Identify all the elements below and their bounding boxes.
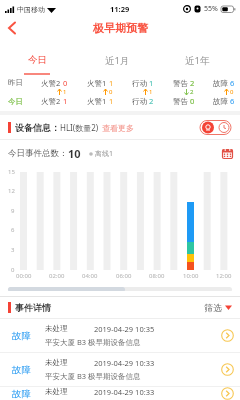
button[interactable]: 设备信息： (0, 115, 240, 139)
staticText: 中国移动 (17, 5, 45, 14)
staticText: 离线1 (95, 149, 114, 159)
staticText: 2 (149, 96, 154, 106)
staticText: HLI(数量2) (60, 122, 99, 133)
button[interactable]: 故障 (0, 387, 240, 400)
staticText: 9 (11, 207, 15, 215)
staticText: 1 (63, 88, 67, 96)
staticText: 08:00 (149, 272, 165, 280)
staticText: 1 (149, 78, 154, 88)
staticText: 近1月 (105, 54, 130, 67)
staticText: 今日事件总数： (8, 148, 68, 159)
staticText: 今日 (8, 97, 23, 106)
staticText: 1 (149, 88, 153, 96)
staticText: 2019-04-29 10:35 (94, 324, 155, 334)
staticText: 查看更多 (102, 123, 134, 133)
staticText: 2019-04-29 10:33 (94, 358, 155, 368)
button[interactable]: 近1月 (77, 44, 157, 76)
staticText: 故障 (12, 330, 31, 342)
staticText: 1 (109, 78, 114, 88)
staticText: 2 (190, 78, 195, 88)
staticText: 警告 (173, 97, 188, 106)
staticText: 0 (63, 78, 68, 88)
staticText: 2019-04-29 10:33 (94, 387, 155, 397)
staticText: 近1年 (185, 54, 210, 67)
staticText: 今日 (28, 54, 47, 66)
staticText: 10 (68, 146, 81, 161)
staticText: 筛选 (204, 302, 222, 313)
staticText: 行动 (132, 79, 147, 88)
staticText: 6 (11, 226, 15, 234)
staticText: 行动 (132, 97, 147, 106)
staticText: 未处理 (45, 387, 68, 396)
staticText: 未处理 (45, 358, 68, 367)
staticText: 02:00 (49, 272, 65, 280)
staticText: 00:00 (16, 272, 32, 280)
staticText: 火警1 (87, 96, 107, 106)
staticText: 6 (230, 96, 235, 106)
staticText: 平安大厦 B3 极早期设备信息 (45, 371, 141, 381)
staticText: 06:00 (116, 272, 132, 280)
staticText: 0 (190, 96, 195, 106)
staticText: 1 (109, 96, 114, 106)
staticText: 平安大厦 B3 极早期设备信息 (45, 337, 141, 347)
staticText: 未处理 (45, 324, 68, 333)
button[interactable] (220, 146, 234, 160)
staticText: 0 (109, 88, 113, 96)
staticText: 事件详情 (15, 302, 51, 313)
staticText: 12 (8, 187, 15, 195)
staticText: 1 (63, 96, 68, 106)
staticText: 故障 (12, 388, 31, 400)
button[interactable]: 故障 (0, 319, 240, 353)
staticText: 警告 (173, 79, 188, 88)
staticText: 火警1 (87, 78, 107, 88)
staticText: 10:00 (183, 272, 199, 280)
staticText: 设备信息： (15, 122, 60, 133)
staticText: 故障 (213, 79, 228, 88)
staticText: 0 (230, 88, 234, 96)
staticText: 2 (190, 88, 194, 96)
staticText: 3 (11, 246, 15, 254)
button[interactable]: 故障 (0, 353, 240, 387)
staticText: 6 (230, 78, 235, 88)
staticText: 火警2 (41, 78, 61, 88)
staticText: 昨日 (8, 78, 23, 87)
staticText: 04:00 (82, 272, 98, 280)
button[interactable] (200, 120, 232, 135)
staticText: 12:00 (216, 272, 232, 280)
staticText: 0 (11, 266, 15, 274)
staticText: 极早期预警 (93, 21, 148, 35)
staticText: 火警2 (41, 96, 61, 106)
button[interactable] (0, 18, 24, 38)
staticText: 15 (8, 168, 15, 176)
button[interactable]: 筛选 (204, 302, 232, 313)
staticText: 11:29 (110, 4, 130, 14)
button[interactable]: 今日 (0, 44, 77, 76)
staticText: 故障 (213, 97, 228, 106)
staticText: 故障 (12, 364, 31, 376)
button[interactable]: 近1年 (157, 44, 237, 76)
staticText: 55% (204, 4, 218, 14)
